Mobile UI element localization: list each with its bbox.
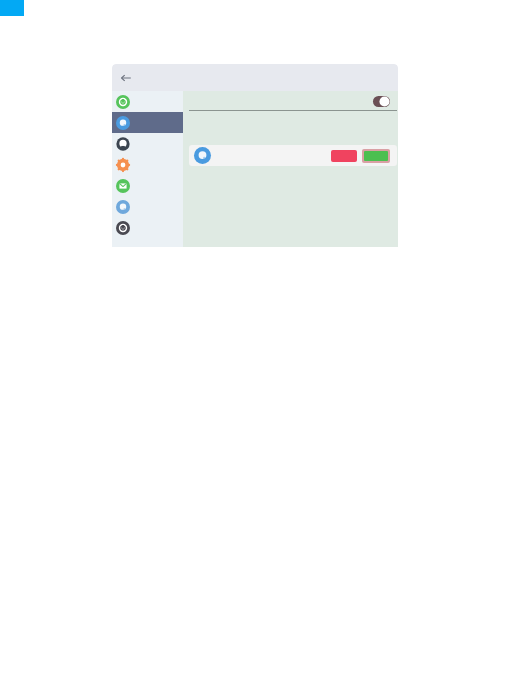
button[interactable]: Dashboard [112, 91, 183, 112]
button[interactable]: Mail [112, 175, 183, 196]
button[interactable]: Start [364, 151, 388, 161]
button[interactable]: Back [118, 70, 134, 86]
button[interactable]: Settings [112, 154, 183, 175]
button[interactable]: Info [112, 196, 183, 217]
button[interactable]: Stop [331, 150, 357, 162]
button[interactable]: Stop [189, 145, 397, 166]
button[interactable]: Help [112, 217, 183, 238]
button[interactable]: Devices [112, 112, 183, 133]
button[interactable]: Toggle [373, 96, 390, 107]
button[interactable]: Messages [112, 133, 183, 154]
